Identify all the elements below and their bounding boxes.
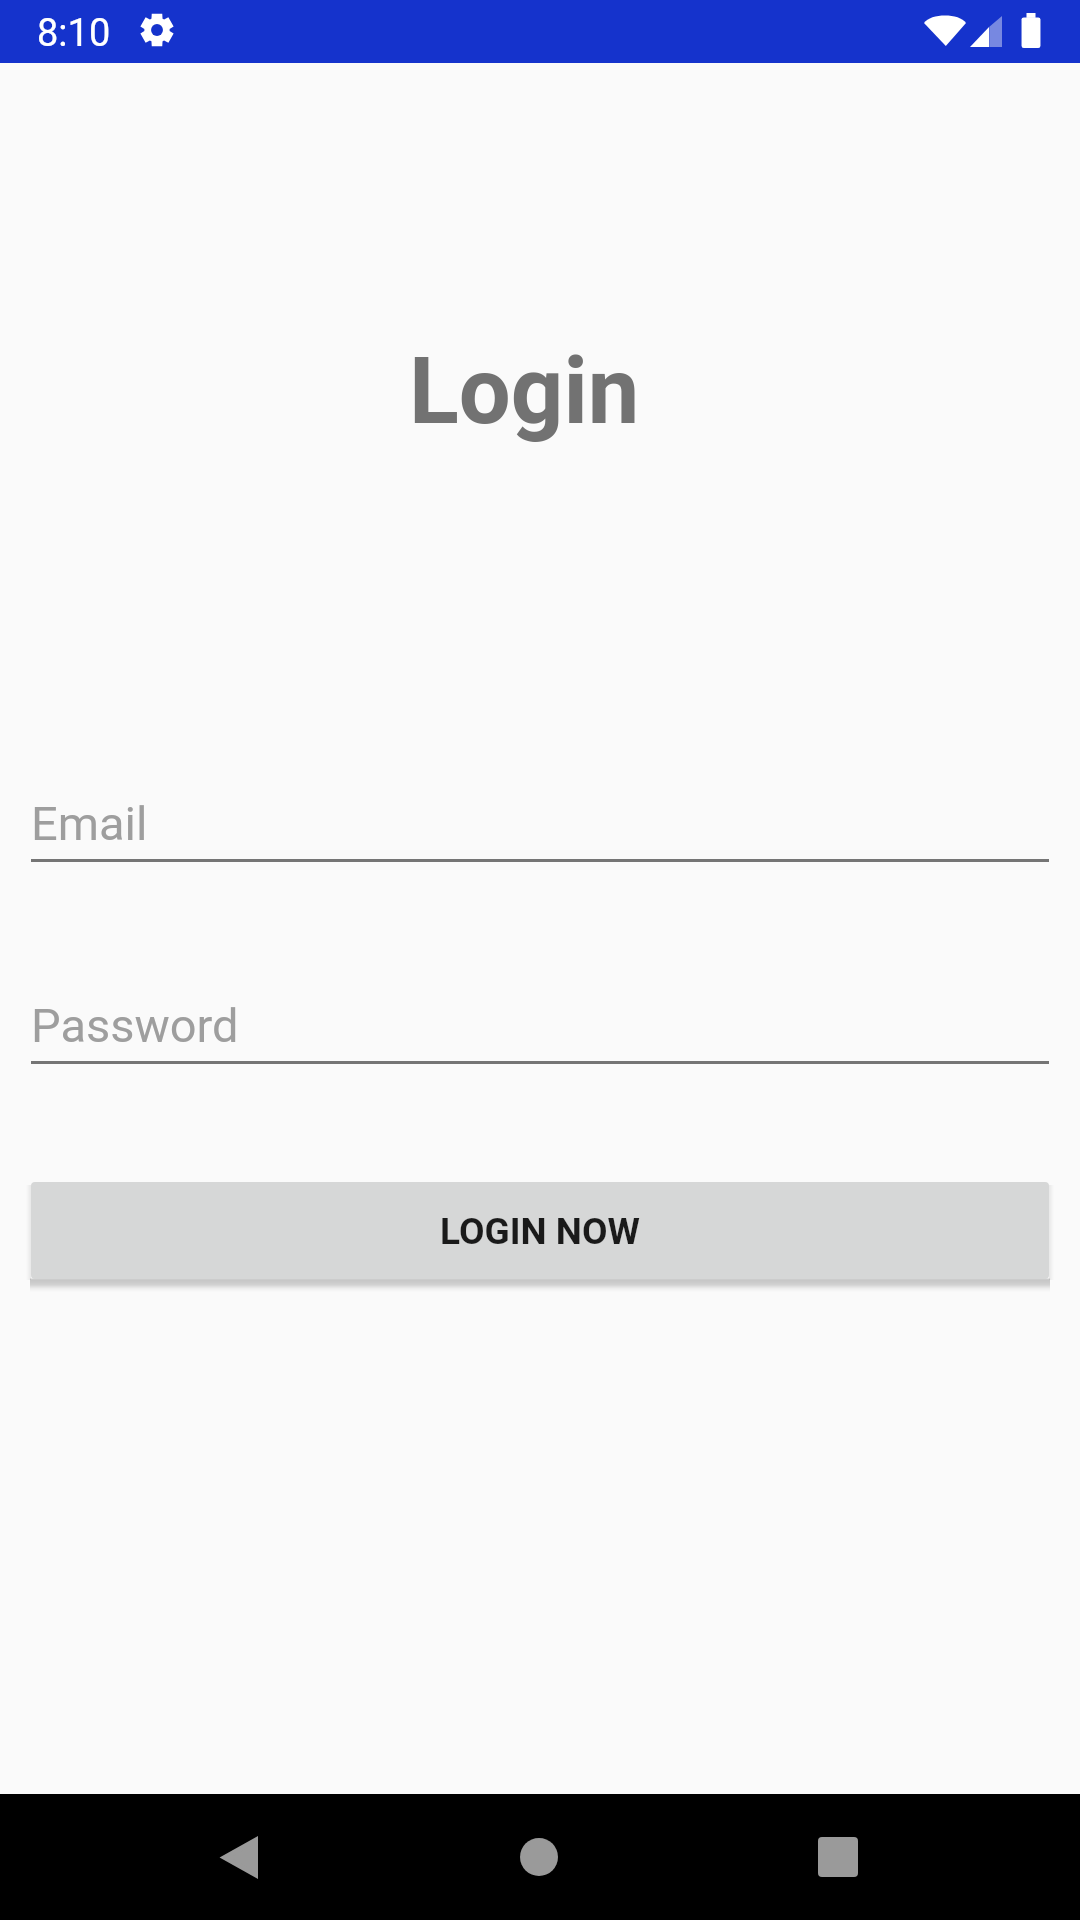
button[interactable]: Recent apps	[778, 1797, 898, 1917]
button[interactable]: Home	[479, 1797, 599, 1917]
button[interactable]: Settings	[140, 13, 174, 47]
staticText: LOGIN NOW	[440, 1210, 640, 1253]
staticText: 8:10	[37, 11, 111, 56]
button[interactable]: Back	[178, 1797, 298, 1917]
button[interactable]: Password	[0, 982, 1080, 1064]
button[interactable]: LOGIN NOW	[31, 1182, 1049, 1279]
staticText: Login	[409, 338, 640, 446]
staticText: Password	[31, 998, 239, 1053]
button[interactable]: Email	[0, 780, 1080, 862]
staticText: Email	[31, 796, 148, 851]
